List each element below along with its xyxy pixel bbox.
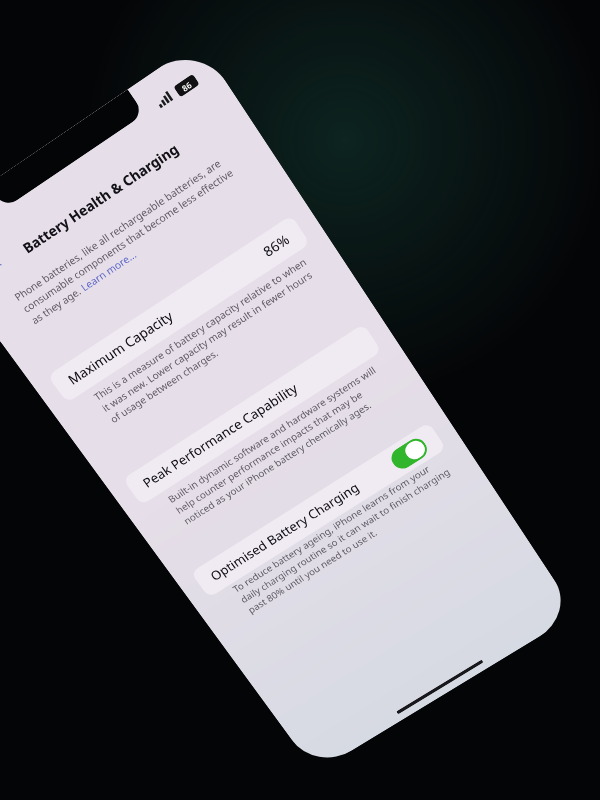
- staticText: daily charging routine so it can wait to…: [238, 465, 453, 606]
- staticText: Back: [0, 254, 4, 281]
- staticText: of usage between charges.: [107, 345, 221, 426]
- staticText: noticed as your iPhone battery chemicall…: [181, 398, 374, 527]
- staticText: it was new. Lower capacity may result in…: [99, 268, 315, 415]
- button[interactable]: Optimised Battery Charging: [190, 422, 446, 598]
- staticText: 86%: [260, 230, 293, 261]
- button[interactable]: Peak Performance Capability: [122, 324, 382, 505]
- staticText: Optimised Battery Charging: [207, 478, 363, 584]
- button[interactable]: Back: [0, 249, 10, 290]
- staticText: help counter performance impacts that ma…: [173, 388, 365, 516]
- staticText: Peak Performance Capability: [139, 379, 301, 491]
- button[interactable]: Optimised Battery Charging toggle: [387, 435, 431, 473]
- staticText: Phone batteries, like all rechargeable b…: [11, 156, 224, 304]
- button[interactable]: Learn more...: [78, 247, 139, 294]
- staticText: past 80% until you need to use it.: [245, 526, 380, 616]
- staticText: This is a measure of battery capacity re…: [91, 254, 309, 403]
- staticText: Battery Health & Charging: [19, 139, 182, 257]
- staticText: To reduce battery ageing, iPhone learns …: [230, 462, 433, 595]
- staticText: Built-in dynamic software and hardware s…: [165, 363, 379, 506]
- staticText: as they age.: [28, 282, 86, 327]
- staticText: Maximum Capacity: [64, 307, 177, 388]
- staticText: 86: [179, 78, 194, 94]
- button[interactable]: Maximum Capacity: [47, 215, 310, 403]
- staticText: consumable components that become less e…: [20, 165, 236, 315]
